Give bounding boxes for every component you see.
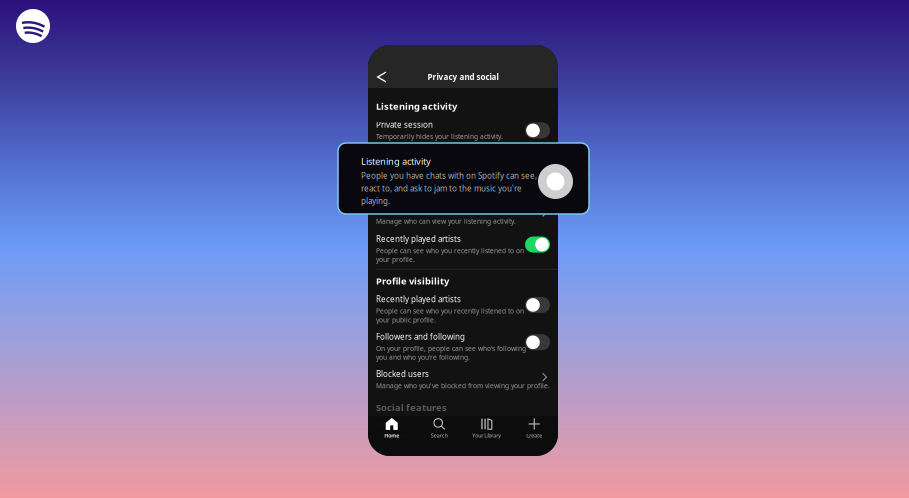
staticText: Followers and following [376,331,465,342]
button[interactable]: Back [372,66,392,88]
staticText: People can see who you recently listened… [376,307,524,324]
staticText: Blocked users [376,369,429,379]
staticText: Manage who can view your listening activ… [376,217,516,226]
staticText: Use bluetooth to seamlessly find and [376,432,492,441]
staticText: Create [526,432,542,439]
staticText: Listening activity [376,100,457,112]
staticText: Manage who you've blocked from viewing y… [376,381,550,390]
staticText: Who can see your listening activity [376,204,506,215]
staticText: Your Library [472,432,501,439]
staticText: Social features [376,401,447,413]
staticText: react to, and ask to jam to the music yo… [361,183,522,194]
staticText: Recently played artists [376,294,461,305]
staticText: Private session [376,119,433,130]
staticText: People can see who you recently listened… [376,246,524,264]
button[interactable]: Recently played artists [368,287,558,326]
staticText: playing. [361,196,390,206]
staticText: Search [431,432,448,439]
button[interactable]: Search [415,415,463,442]
staticText: Jam [376,418,389,429]
staticText: Temporarily hides your listening activit… [376,132,503,141]
button[interactable]: Followers and following [368,326,558,364]
staticText: Recently played artists [376,233,461,244]
staticText: Privacy and social [427,72,498,82]
staticText: People you have chats with on Spotify ca… [361,170,537,181]
button[interactable]: Your Library [463,415,510,442]
staticText: Listening activity [376,149,439,159]
staticText: People you have chats with on Spotify ca… [376,161,522,188]
button[interactable]: Blocked users [368,364,558,393]
staticText: Profile visibility [376,275,449,287]
staticText: Listening activity [361,155,431,167]
button[interactable]: Who can see your listening activity [368,193,558,230]
button[interactable]: Private session [368,112,558,144]
button[interactable]: Home [368,415,415,442]
button[interactable]: Create [510,415,558,442]
staticText: On your profile, people can see who's fo… [376,344,526,362]
staticText: Home [384,432,399,439]
button[interactable]: Recently played artists [368,229,558,269]
button[interactable]: Listening activity [368,144,558,193]
